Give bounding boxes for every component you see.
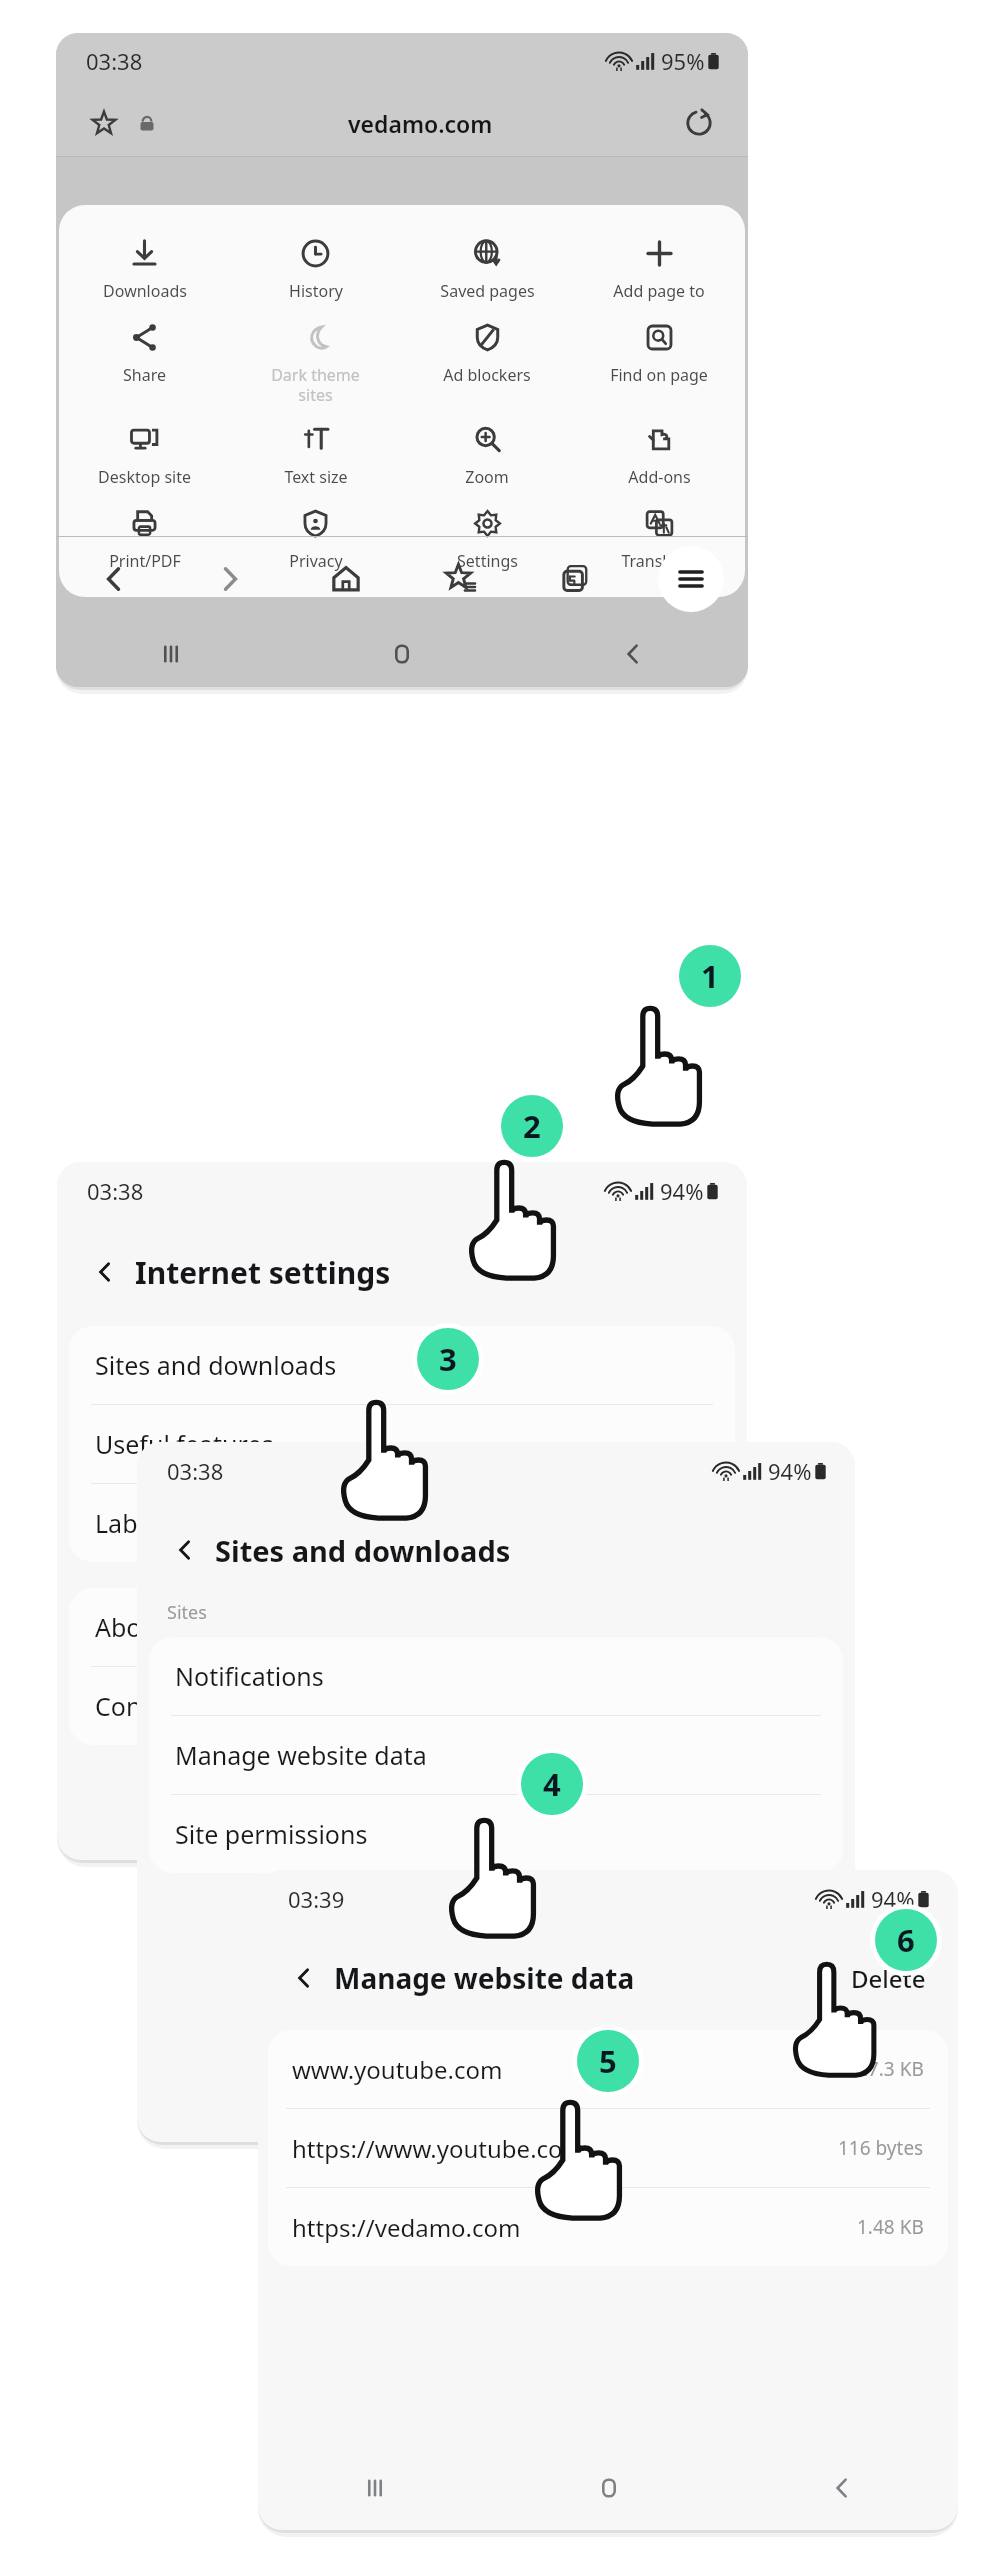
button[interactable]: Sites and downloads (69, 1326, 735, 1404)
staticText: 94% (660, 1176, 704, 1206)
staticText: 27.3 KB (857, 2056, 924, 2082)
staticText: Zoom (465, 466, 509, 488)
staticText: Manage website data (175, 1738, 427, 1772)
button[interactable]: Dark theme sites (230, 318, 401, 409)
staticText: Delete (851, 1962, 926, 1995)
button[interactable]: https://vedamo.com (268, 2188, 948, 2266)
staticText: 03:38 (86, 46, 143, 76)
button[interactable]: Find on page (573, 318, 745, 390)
staticText: Print/PDF (109, 550, 181, 572)
button[interactable]: Contact us (69, 1667, 735, 1745)
button[interactable]: Recents (258, 2452, 492, 2524)
staticText: Manage website data (334, 1959, 635, 1997)
staticText: Share (123, 364, 166, 386)
staticText: 94% (871, 1884, 915, 1914)
staticText: Translator (621, 550, 698, 572)
button[interactable]: Translator (573, 504, 745, 576)
staticText: About Internet (95, 1610, 269, 1644)
staticText: Saved pages (440, 280, 535, 302)
staticText: 3 (439, 1338, 457, 1380)
staticText: Useful features (95, 1427, 274, 1461)
button[interactable]: Navigate up (81, 1248, 129, 1296)
button[interactable]: Site permissions (149, 1795, 843, 1873)
button[interactable]: Forward (172, 537, 288, 621)
button[interactable]: Settings (401, 504, 573, 576)
staticText: 95% (661, 46, 705, 76)
button[interactable]: Downloads (59, 234, 230, 306)
staticText: https://www.youtube.com (292, 2132, 586, 2165)
button[interactable]: Navigate up (280, 1954, 328, 2002)
button[interactable]: Notifications (149, 1637, 843, 1715)
button[interactable]: Ad blockers (401, 318, 573, 390)
staticText: 6 (897, 1919, 915, 1961)
staticText: Labs (95, 1506, 150, 1540)
staticText: Sites and downloads (95, 1348, 337, 1382)
button[interactable]: History (230, 234, 401, 306)
button[interactable]: Desktop site (59, 420, 230, 492)
button[interactable]: Print/PDF (59, 504, 230, 576)
staticText: Contact us (95, 1689, 220, 1723)
staticText: Sites and downloads (215, 1531, 511, 1570)
button[interactable]: www.youtube.com (268, 2030, 948, 2108)
button[interactable]: Add-ons (573, 420, 745, 492)
staticText: Ad blockers (443, 364, 531, 386)
staticText: 2 (523, 1105, 541, 1147)
staticText: 5 (599, 2040, 617, 2082)
staticText: 94% (768, 1456, 812, 1486)
staticText: 1.48 KB (857, 2214, 924, 2240)
button[interactable]: Text size (230, 420, 401, 492)
staticText: Add-ons (628, 466, 691, 488)
staticText: 03:39 (288, 1884, 345, 1914)
staticText: www.youtube.com (292, 2053, 503, 2086)
staticText: Site permissions (175, 1817, 368, 1851)
button[interactable]: Secure connection (130, 106, 164, 140)
button[interactable]: Back (56, 537, 172, 621)
staticText: vedamo.com (348, 108, 493, 139)
staticText: 1 (701, 955, 719, 997)
staticText: 116 bytes (838, 2135, 924, 2161)
button[interactable]: Zoom (401, 420, 573, 492)
staticText: https://vedamo.com (292, 2211, 521, 2244)
button[interactable]: Navigate up (161, 1526, 209, 1574)
button[interactable]: Menu (658, 546, 724, 612)
button[interactable]: Recents (56, 621, 286, 687)
button[interactable]: Add page to (573, 234, 745, 306)
staticText: Sites (167, 1600, 207, 1625)
button[interactable]: Back (517, 621, 748, 687)
staticText: Text size (284, 466, 348, 488)
staticText: Notifications (175, 1659, 324, 1693)
button[interactable]: Home (286, 621, 517, 687)
button[interactable]: Home (492, 2452, 725, 2524)
staticText: 03:38 (167, 1456, 224, 1486)
staticText: Settings (457, 550, 518, 572)
button[interactable]: Bookmarks (403, 537, 518, 621)
button[interactable]: Labs (69, 1484, 735, 1562)
staticText: Find on page (610, 364, 708, 386)
button[interactable]: Tabs (518, 537, 633, 621)
button[interactable]: https://www.youtube.com (268, 2109, 948, 2187)
staticText: 03:38 (87, 1176, 144, 1206)
button[interactable]: Home (288, 537, 403, 621)
button[interactable]: Delete (847, 1954, 930, 2003)
staticText: Privacy (289, 550, 343, 572)
staticText: Internet settings (135, 1252, 391, 1293)
button[interactable]: About Internet (69, 1588, 735, 1666)
button[interactable]: Useful features (69, 1405, 735, 1483)
button[interactable]: Privacy (230, 504, 401, 576)
staticText: History (289, 280, 343, 302)
staticText: Add page to (613, 280, 705, 302)
staticText: Dark theme sites (271, 364, 360, 405)
button[interactable]: Reload (678, 102, 720, 144)
button[interactable]: Manage website data (149, 1716, 843, 1794)
staticText: Downloads (103, 280, 187, 302)
button[interactable]: Share (59, 318, 230, 390)
button[interactable]: Bookmark (84, 103, 124, 143)
staticText: Desktop site (98, 466, 191, 488)
button[interactable]: Back (725, 2452, 958, 2524)
staticText: 4 (543, 1763, 561, 1805)
button[interactable]: Saved pages (401, 234, 573, 306)
